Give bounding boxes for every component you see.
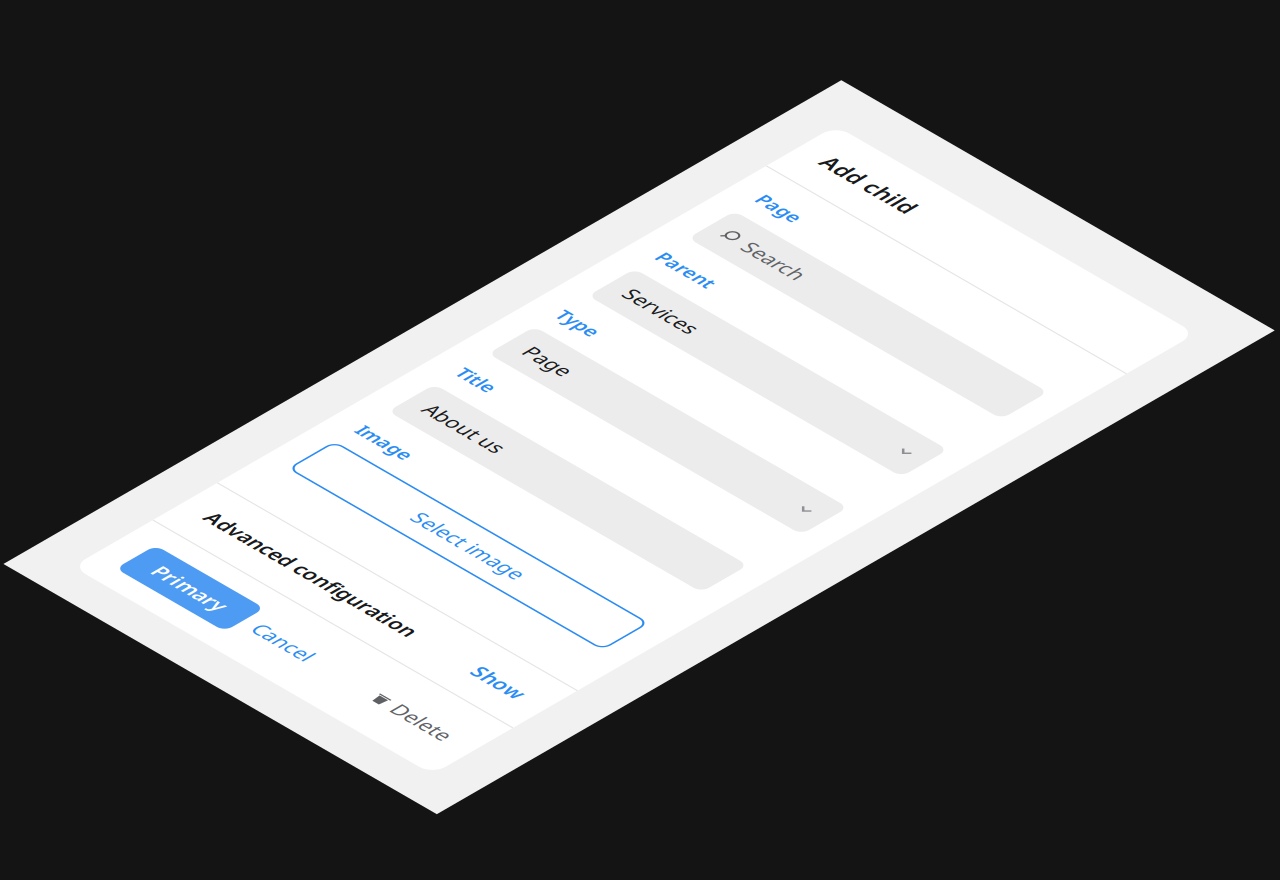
button[interactable]: Cancel [152, 671, 222, 707]
button[interactable]: Select image [54, 510, 336, 551]
staticText: Advanced configuration [54, 613, 239, 634]
button[interactable]: Advanced configuration [33, 595, 357, 652]
staticText: Delete [287, 678, 336, 700]
staticText: Cancel [162, 678, 212, 700]
staticText: Show [294, 613, 336, 634]
button[interactable]: Delete [270, 671, 336, 707]
staticText: Select image [147, 520, 243, 541]
